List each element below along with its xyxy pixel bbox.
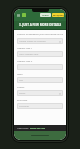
staticText: United States of America (19, 40, 59, 43)
button[interactable]: Logo (22, 13, 26, 17)
staticText: Need help? (17, 127, 30, 130)
staticText: Your Address Line (19, 53, 61, 56)
staticText: Post code (17, 99, 28, 102)
staticText: County (17, 86, 25, 89)
button[interactable]: LOGIN (40, 13, 51, 17)
button[interactable]: City (17, 77, 63, 83)
staticText: GET QUOTE (53, 14, 64, 17)
button[interactable]: Postcode (17, 103, 63, 109)
staticText: City (19, 79, 61, 82)
staticText: Country of Residence (you must reside in… (17, 33, 63, 36)
button[interactable]: Select (17, 90, 63, 96)
staticText: Town (17, 73, 23, 76)
staticText: Select (19, 92, 59, 95)
staticText: Address Line 1 (17, 47, 33, 50)
staticText: LOGIN (42, 14, 49, 17)
staticText: Postcode (19, 105, 61, 108)
staticText: 3. JUST A FEW MORE DETAILS (19, 23, 62, 27)
button[interactable]: Your Address Line (17, 51, 63, 57)
button[interactable] (17, 64, 63, 70)
staticText: Address Line 2 (17, 60, 33, 63)
button[interactable]: Menu (16, 13, 20, 17)
button[interactable]: GET QUOTE (52, 13, 64, 17)
button[interactable]: 08000 260 280 (30, 127, 45, 130)
button[interactable]: United States of America (17, 38, 63, 44)
